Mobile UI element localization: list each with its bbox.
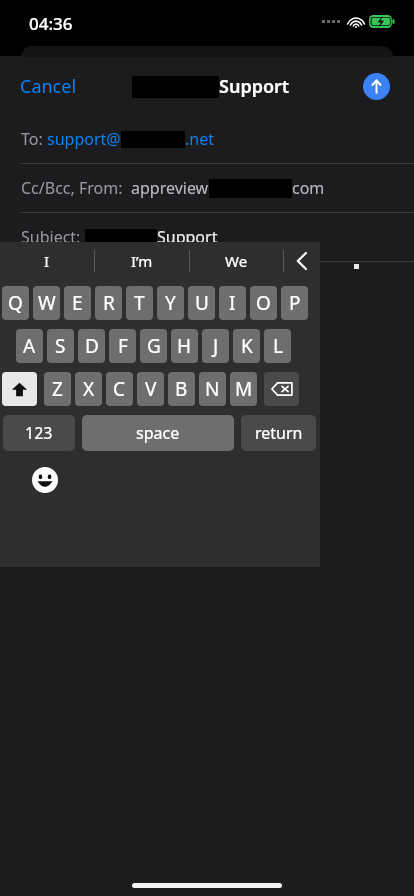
button[interactable]: E	[64, 286, 91, 320]
button[interactable]: Previous	[284, 242, 320, 280]
staticText: We	[225, 251, 248, 271]
button[interactable]: Send	[363, 73, 390, 100]
staticText: Q	[8, 290, 23, 316]
staticText: return	[255, 422, 303, 444]
button[interactable]: F	[109, 329, 136, 363]
button[interactable]: H	[171, 329, 198, 363]
staticText: To:	[21, 128, 47, 150]
staticText: .net	[185, 128, 214, 150]
staticText: X	[83, 376, 95, 402]
button[interactable]: Y	[157, 286, 184, 320]
staticText: T	[134, 290, 145, 316]
button[interactable]: R	[95, 286, 122, 320]
button[interactable]: return	[241, 415, 316, 451]
staticText: 123	[25, 422, 53, 444]
staticText: Subject:	[21, 226, 85, 248]
button[interactable]: I	[0, 242, 94, 280]
staticText: appreview	[131, 177, 209, 199]
button[interactable]: space	[82, 415, 234, 451]
button[interactable]: K	[233, 329, 260, 363]
button[interactable]: A	[16, 329, 43, 363]
staticText: J	[213, 333, 219, 359]
button[interactable]: W	[33, 286, 60, 320]
button[interactable]: Cc/Bcc, From:	[0, 164, 414, 212]
button[interactable]: Q	[2, 286, 29, 320]
button[interactable]: Backspace	[264, 372, 299, 406]
staticText: V	[145, 376, 157, 402]
button[interactable]: X	[75, 372, 102, 406]
button[interactable]: We	[190, 242, 283, 280]
button[interactable]: C	[106, 372, 133, 406]
staticText: K	[241, 333, 253, 359]
staticText: A	[23, 333, 36, 359]
button[interactable]: T	[126, 286, 153, 320]
staticText: Support	[157, 226, 218, 248]
staticText: Y	[165, 290, 176, 316]
staticText: C	[113, 376, 126, 402]
button[interactable]: L	[264, 329, 291, 363]
staticText: D	[85, 333, 99, 359]
button[interactable]: V	[137, 372, 164, 406]
staticText: P	[289, 290, 301, 316]
staticText: G	[147, 333, 161, 359]
button[interactable]: M	[230, 372, 257, 406]
staticText: I’m	[131, 251, 153, 271]
staticText: I	[229, 290, 236, 316]
button[interactable]: Cancel	[10, 68, 87, 105]
staticText: O	[256, 290, 271, 316]
button[interactable]: I	[219, 286, 246, 320]
staticText: M	[235, 376, 253, 402]
button[interactable]: Shift	[2, 372, 37, 406]
staticText: S	[55, 333, 66, 359]
button[interactable]: G	[140, 329, 167, 363]
staticText: R	[103, 290, 115, 316]
staticText: N	[205, 376, 220, 402]
staticText: com	[292, 177, 325, 199]
staticText: U	[195, 290, 209, 316]
button[interactable]: J	[202, 329, 229, 363]
button[interactable]: U	[188, 286, 215, 320]
button[interactable]: D	[78, 329, 105, 363]
button[interactable]: Z	[44, 372, 71, 406]
button[interactable]: Subject:	[0, 213, 414, 261]
staticText: I	[44, 251, 50, 271]
staticText: F	[118, 333, 128, 359]
staticText: Cc/Bcc, From:	[21, 177, 131, 199]
button[interactable]: 123	[3, 415, 75, 451]
button[interactable]: B	[168, 372, 195, 406]
staticText: B	[175, 376, 188, 402]
staticText: space	[136, 422, 180, 444]
staticText: support@	[47, 128, 121, 150]
button[interactable]: N	[199, 372, 226, 406]
staticText: L	[273, 333, 283, 359]
staticText: Cancel	[20, 74, 77, 99]
staticText: Z	[52, 376, 63, 402]
button[interactable]: P	[281, 286, 308, 320]
button[interactable]: To:	[0, 115, 414, 163]
staticText: Support	[219, 74, 290, 99]
staticText: 04:36	[29, 12, 73, 35]
button[interactable]: S	[47, 329, 74, 363]
button[interactable]: I’m	[95, 242, 189, 280]
staticText: W	[38, 290, 56, 316]
staticText: H	[177, 333, 192, 359]
button[interactable]: O	[250, 286, 277, 320]
button[interactable]: Emoji	[30, 465, 60, 495]
staticText: E	[72, 290, 83, 316]
